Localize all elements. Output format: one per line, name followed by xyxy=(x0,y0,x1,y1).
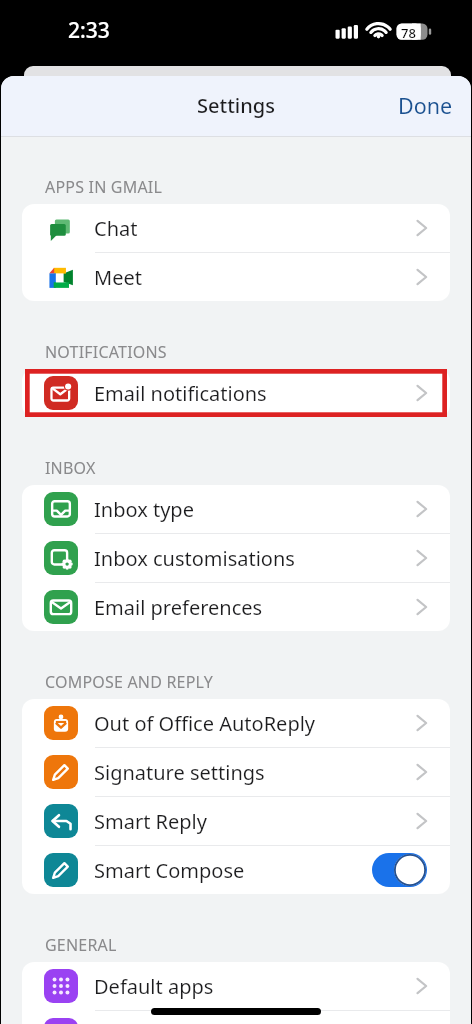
staticText: Out of Office AutoReply xyxy=(94,710,316,737)
button[interactable]: Default apps xyxy=(22,962,450,1010)
staticText: Signature settings xyxy=(94,759,265,786)
staticText: INBOX xyxy=(45,457,96,479)
staticText: NOTIFICATIONS xyxy=(45,341,167,363)
staticText: Smart Compose xyxy=(94,857,245,884)
button[interactable]: Inbox type xyxy=(22,485,450,533)
staticText: APPS IN GMAIL xyxy=(45,176,163,198)
staticText: Email preferences xyxy=(94,594,263,621)
staticText: Done xyxy=(398,91,453,120)
button[interactable]: Email notifications xyxy=(22,369,450,417)
staticText: GENERAL xyxy=(45,934,117,956)
button[interactable]: Smart Reply xyxy=(22,797,450,845)
staticText: Inbox type xyxy=(94,496,194,523)
button[interactable]: Smart Compose xyxy=(22,846,450,894)
button[interactable]: Signature settings xyxy=(22,748,450,796)
button[interactable]: Chat xyxy=(22,204,450,252)
button[interactable] xyxy=(22,1011,450,1024)
button[interactable]: Done xyxy=(374,77,471,136)
button[interactable]: Inbox customisations xyxy=(22,534,450,582)
staticText: Meet xyxy=(94,264,142,291)
staticText: COMPOSE AND REPLY xyxy=(45,671,213,693)
staticText: Smart Reply xyxy=(94,808,207,835)
button[interactable]: Meet xyxy=(22,253,450,301)
staticText: 78 xyxy=(401,24,416,42)
staticText: Default apps xyxy=(94,973,214,1000)
staticText: Inbox customisations xyxy=(94,545,295,572)
button[interactable]: Out of Office AutoReply xyxy=(22,699,450,747)
staticText: Chat xyxy=(94,215,138,242)
staticText: Settings xyxy=(197,92,275,119)
button[interactable]: Smart Compose toggle xyxy=(372,853,427,887)
staticText: Email notifications xyxy=(94,380,267,407)
button[interactable]: Email preferences xyxy=(22,583,450,631)
staticText: 2:33 xyxy=(68,16,110,45)
